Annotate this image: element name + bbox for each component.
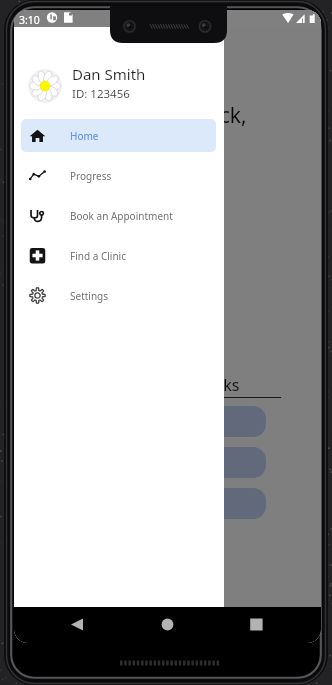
staticText: Tasks [199,374,240,396]
button[interactable]: Book an Appointment [21,199,216,232]
staticText: Welcome back, [99,101,247,130]
staticText: Home [70,129,99,143]
staticText: Progress [70,169,112,183]
staticText: Find a Clinic [70,249,126,263]
staticText: ID: 123456 [72,86,130,102]
staticText: 3:10 [19,13,40,27]
button[interactable] [34,488,266,519]
button[interactable]: Find a Clinic [21,239,216,272]
button[interactable]: Home [21,119,216,152]
button[interactable] [34,406,266,437]
button[interactable]: Progress [21,159,216,192]
button[interactable] [34,447,266,478]
staticText: Settings [70,289,109,303]
staticText: Book an Appointment [70,209,173,223]
staticText: Dan Smith [72,64,146,84]
button[interactable]: Settings [21,279,216,312]
